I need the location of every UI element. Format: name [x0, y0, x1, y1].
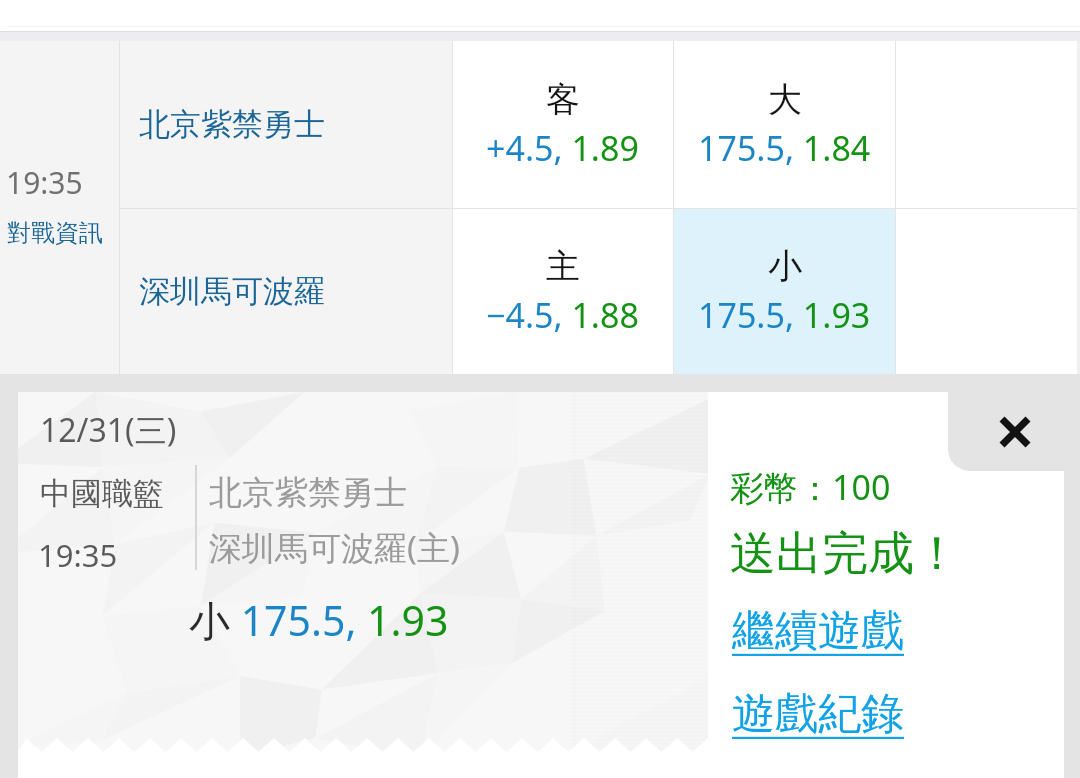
staticText: 大: [768, 78, 802, 121]
staticText: 彩幣：100: [730, 464, 891, 510]
staticText: 175.5, 1.93: [698, 292, 871, 338]
staticText: 繼續遊戲: [732, 604, 904, 658]
button[interactable]: Close: [948, 374, 1064, 471]
staticText: 送出完成！: [730, 525, 960, 583]
button[interactable]: 小: [673, 209, 895, 374]
staticText: 19:35: [38, 534, 118, 576]
button[interactable]: 繼續遊戲: [732, 604, 904, 658]
staticText: −4.5, 1.88: [486, 292, 639, 338]
staticText: 小: [768, 245, 802, 288]
staticText: 12/31(三): [40, 408, 177, 452]
staticText: 175.5, 1.84: [698, 125, 871, 171]
button[interactable]: 深圳馬可波羅: [120, 209, 452, 374]
button[interactable]: 客: [452, 41, 673, 208]
staticText: 北京紫禁勇士: [139, 105, 325, 144]
staticText: 主: [546, 245, 580, 288]
staticText: 小 175.5, 1.93: [189, 592, 449, 648]
staticText: 客: [546, 78, 580, 121]
staticText: +4.5, 1.89: [486, 125, 639, 171]
staticText: 對戰資訊: [7, 218, 103, 248]
button[interactable]: 主: [452, 209, 673, 374]
button[interactable]: 大: [673, 41, 895, 208]
button[interactable]: 北京紫禁勇士: [120, 41, 452, 208]
staticText: 深圳馬可波羅(主): [209, 525, 460, 570]
staticText: 遊戲紀錄: [732, 687, 904, 741]
staticText: 19:35: [6, 162, 83, 203]
staticText: 中國職籃: [40, 474, 164, 513]
button[interactable]: 遊戲紀錄: [732, 687, 904, 741]
staticText: 北京紫禁勇士: [209, 472, 407, 514]
button[interactable]: 對戰資訊: [0, 209, 119, 271]
staticText: 深圳馬可波羅: [139, 272, 325, 311]
